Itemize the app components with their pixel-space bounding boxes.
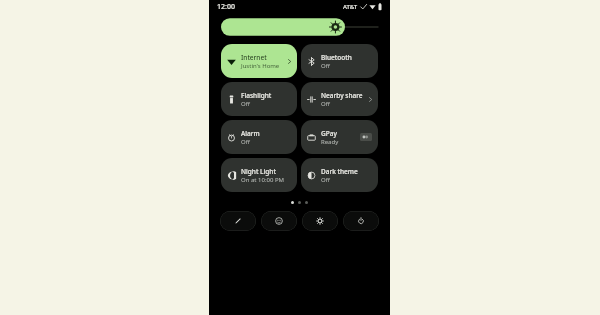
button[interactable]: Internet [221,44,297,78]
staticText: AT&T [343,3,358,11]
staticText: On at 10:00 PM [241,176,285,184]
staticText: Off [321,100,330,108]
button[interactable]: Flashlight [221,82,297,116]
button[interactable]: Dark theme [301,158,378,192]
button[interactable]: Brightness [221,17,378,37]
staticText: Justin's Home [241,62,280,70]
button[interactable]: Bluetooth [301,44,378,78]
staticText: Alarm [241,129,260,138]
staticText: 12:00 [217,2,235,12]
button[interactable]: Account [261,211,297,231]
staticText: Night Light [241,167,276,176]
button[interactable]: Nearby share [301,82,378,116]
staticText: GPay [321,129,337,138]
staticText: Internet [241,53,267,62]
staticText: Off [241,100,250,108]
staticText: Off [321,176,330,184]
staticText: Dark theme [321,167,358,176]
staticText: Ready [321,138,339,146]
staticText: Off [321,62,330,70]
button[interactable]: Edit [220,211,256,231]
button[interactable]: Settings [302,211,338,231]
button[interactable]: Night Light [221,158,297,192]
staticText: Off [241,138,250,146]
staticText: Flashlight [241,91,272,100]
button[interactable]: Power [343,211,379,231]
staticText: Bluetooth [321,53,352,62]
button[interactable]: Alarm [221,120,297,154]
button[interactable]: GPay [301,120,378,154]
staticText: Nearby share [321,91,363,100]
